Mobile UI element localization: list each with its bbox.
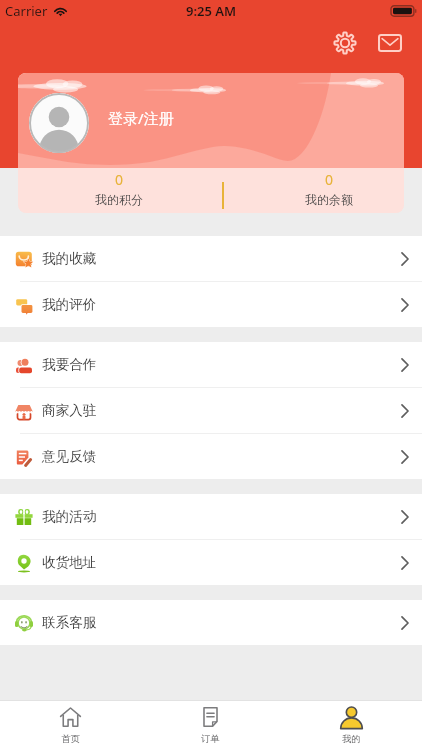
button[interactable]: 联系客服	[0, 600, 422, 645]
staticText: 首页	[61, 733, 80, 745]
button[interactable]: Settings	[325, 23, 365, 63]
staticText: Carrier	[5, 2, 48, 20]
staticText: 我的积分	[95, 192, 143, 207]
staticText: 0	[115, 170, 124, 189]
button[interactable]: 0	[59, 170, 179, 207]
button[interactable]: 我的收藏	[0, 236, 422, 281]
staticText: 我的评价	[42, 296, 97, 313]
staticText: 商家入驻	[42, 402, 97, 419]
button[interactable]: 订单	[140, 701, 281, 750]
button[interactable]: 商家入驻	[0, 388, 422, 433]
button[interactable]: 我的	[281, 701, 422, 750]
button[interactable]: 我的评价	[0, 282, 422, 327]
staticText: 0	[325, 170, 334, 189]
staticText: 我要合作	[42, 356, 97, 373]
staticText: 9:25 AM	[186, 2, 237, 20]
button[interactable]: 0	[269, 170, 389, 207]
staticText: 我的活动	[42, 508, 97, 525]
staticText: 订单	[201, 733, 220, 745]
button[interactable]: 首页	[0, 701, 140, 750]
button[interactable]: 收货地址	[0, 540, 422, 585]
button[interactable]: Avatar	[29, 93, 89, 153]
staticText: 我的余额	[305, 192, 353, 207]
button[interactable]: Messages	[370, 23, 410, 63]
staticText: 我的	[342, 733, 361, 745]
button[interactable]: 意见反馈	[0, 434, 422, 479]
staticText: 我的收藏	[42, 250, 97, 267]
button[interactable]: 我的活动	[0, 494, 422, 539]
staticText: 联系客服	[42, 614, 97, 631]
button[interactable]: 我要合作	[0, 342, 422, 387]
staticText: 收货地址	[42, 554, 97, 571]
staticText: 意见反馈	[42, 448, 97, 465]
staticText: 登录/注册	[108, 108, 174, 128]
